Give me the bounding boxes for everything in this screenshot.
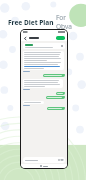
button[interactable] xyxy=(24,102,43,103)
button[interactable] xyxy=(57,93,64,94)
button[interactable]: Back xyxy=(23,36,27,40)
staticText: Free Diet Plan xyxy=(8,18,56,27)
button[interactable] xyxy=(47,97,64,98)
button[interactable]: Close xyxy=(25,44,63,48)
button[interactable] xyxy=(24,80,62,87)
button[interactable]: Attach xyxy=(25,157,63,163)
button[interactable] xyxy=(56,36,65,40)
button[interactable]: Camera xyxy=(61,159,63,161)
button[interactable] xyxy=(48,108,64,109)
button[interactable] xyxy=(44,75,64,76)
button[interactable] xyxy=(24,52,63,69)
staticText: Customers xyxy=(26,32,60,41)
staticText: For Obva xyxy=(56,13,78,31)
